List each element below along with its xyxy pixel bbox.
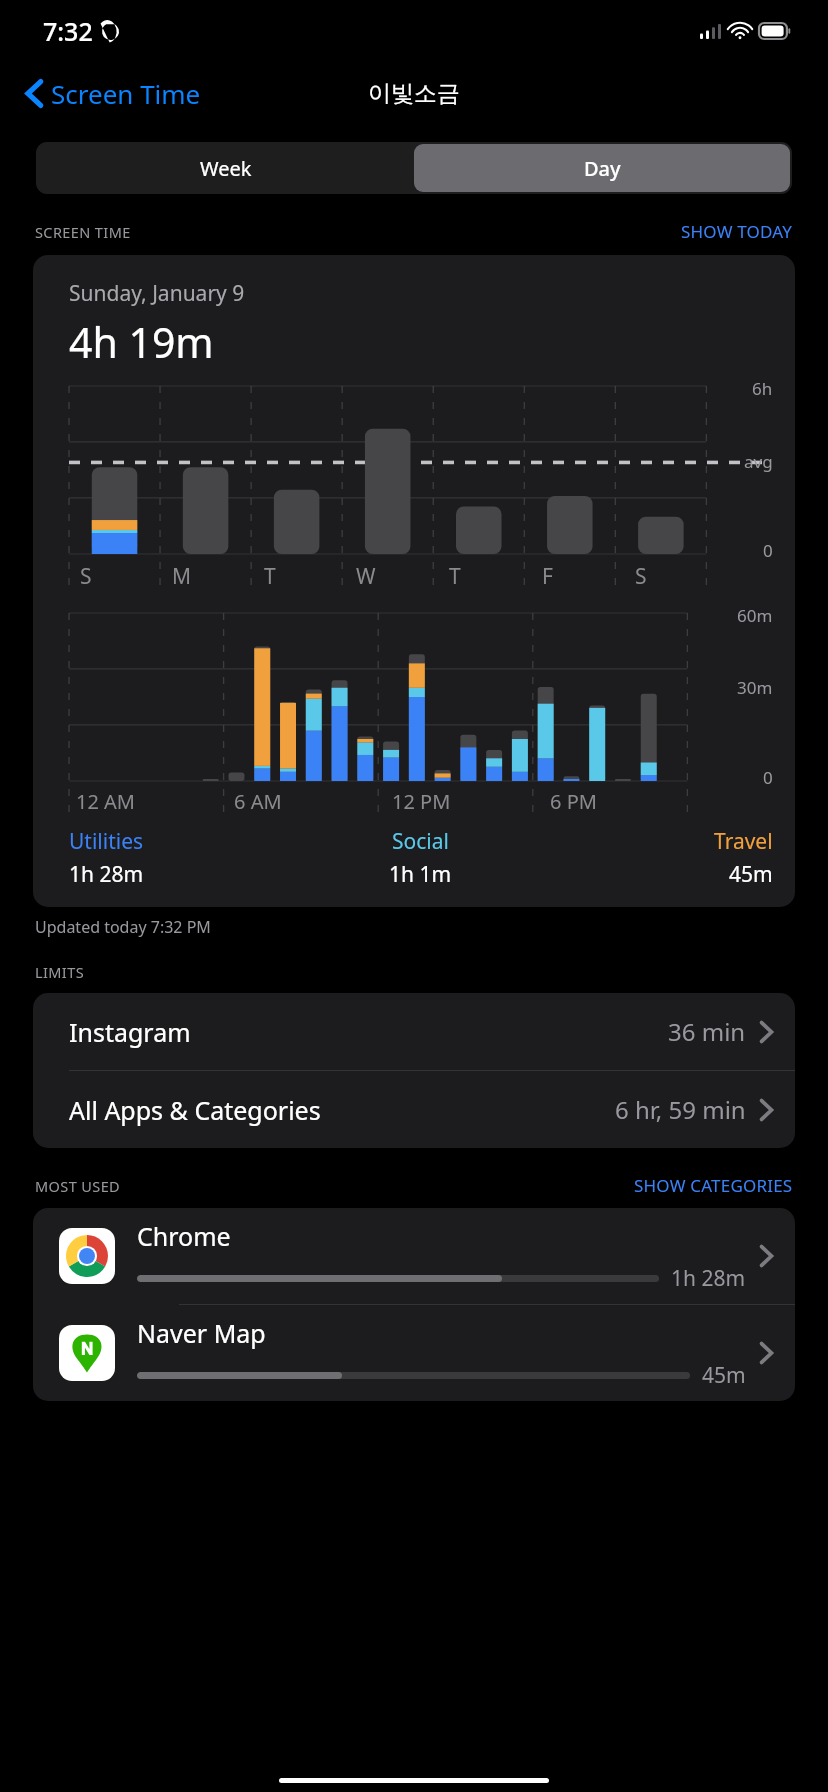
staticText: W	[356, 562, 376, 591]
staticText: MOST USED	[35, 1176, 121, 1196]
button[interactable]: Week	[38, 144, 414, 192]
staticText: Sunday, January 9	[69, 279, 245, 308]
button[interactable]: Social	[303, 827, 538, 889]
button[interactable]: All Apps & Categories	[33, 1071, 795, 1148]
staticText: 12 PM	[392, 788, 451, 815]
staticText: LIMITS	[35, 962, 85, 982]
staticText: avg	[744, 450, 773, 473]
button[interactable]: Day	[414, 144, 790, 192]
staticText: Screen Time	[51, 76, 201, 111]
button[interactable]: Travel	[538, 827, 773, 889]
staticText: Naver Map	[137, 1316, 266, 1350]
staticText: Utilities	[69, 827, 144, 856]
staticText: 36 min	[668, 1015, 746, 1048]
button[interactable]: SHOW TODAY	[681, 220, 793, 243]
staticText: SHOW CATEGORIES	[634, 1174, 793, 1197]
staticText: 0	[763, 766, 773, 789]
staticText: 6h	[752, 377, 773, 400]
staticText: 1h 28m	[671, 1264, 746, 1293]
staticText: 6 hr, 59 min	[615, 1093, 746, 1126]
staticText: T	[449, 562, 461, 591]
staticText: 1h 28m	[69, 860, 144, 889]
staticText: Travel	[714, 827, 773, 856]
staticText: T	[264, 562, 276, 591]
staticText: S	[80, 562, 92, 591]
staticText: Instagram	[69, 1015, 191, 1049]
staticText: 1h 1m	[389, 860, 452, 889]
staticText: 45m	[729, 860, 773, 889]
button[interactable]: Naver Map	[33, 1305, 795, 1401]
staticText: SCREEN TIME	[35, 222, 131, 242]
staticText: 45m	[702, 1361, 746, 1390]
button[interactable]: Utilities	[69, 827, 303, 889]
staticText: 30m	[737, 676, 773, 699]
staticText: S	[635, 562, 647, 591]
staticText: 이빛소금	[368, 79, 460, 108]
staticText: F	[542, 562, 553, 591]
staticText: Week	[200, 155, 252, 182]
staticText: All Apps & Categories	[69, 1093, 321, 1127]
staticText: 12 AM	[76, 788, 135, 815]
staticText: 7:32	[43, 14, 93, 48]
staticText: 4h 19m	[69, 314, 214, 370]
staticText: 6 PM	[550, 788, 597, 815]
button[interactable]: SHOW CATEGORIES	[634, 1174, 793, 1197]
staticText: 6 AM	[234, 788, 282, 815]
staticText: 60m	[737, 604, 773, 627]
staticText: M	[172, 562, 192, 591]
staticText: Updated today 7:32 PM	[35, 916, 211, 938]
staticText: Chrome	[137, 1219, 231, 1253]
staticText: Day	[584, 155, 621, 182]
button[interactable]: Chrome	[33, 1208, 795, 1304]
staticText: SHOW TODAY	[681, 220, 793, 243]
staticText: 0	[763, 539, 773, 562]
staticText: Social	[392, 827, 449, 856]
button[interactable]: Screen Time	[20, 72, 207, 115]
button[interactable]: Instagram	[33, 993, 795, 1070]
